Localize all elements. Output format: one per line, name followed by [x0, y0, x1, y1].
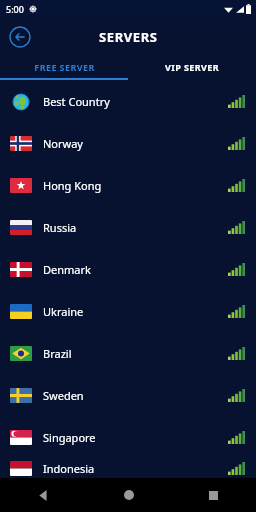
button[interactable]: Back — [0, 478, 86, 512]
staticText: Sweden — [43, 388, 228, 403]
button[interactable]: FREE SERVER — [0, 55, 128, 78]
staticText: VIP SERVER — [165, 61, 219, 73]
button[interactable]: Hong Kong — [0, 164, 256, 206]
staticText: Russia — [43, 220, 228, 235]
button[interactable]: VIP SERVER — [128, 55, 256, 78]
button[interactable]: Norway — [0, 122, 256, 164]
staticText: Ukraine — [43, 304, 228, 319]
staticText: FREE SERVER — [34, 61, 95, 73]
button[interactable]: Recents — [171, 478, 256, 512]
button[interactable]: Sweden — [0, 374, 256, 416]
button[interactable]: Best Country — [0, 80, 256, 122]
button[interactable]: Denmark — [0, 248, 256, 290]
button[interactable]: Home — [86, 478, 171, 512]
staticText: Hong Kong — [43, 178, 228, 193]
staticText: Best Country — [43, 94, 228, 109]
button[interactable]: Ukraine — [0, 290, 256, 332]
staticText: Indonesia — [43, 461, 228, 476]
staticText: Singapore — [43, 430, 228, 445]
button[interactable]: Russia — [0, 206, 256, 248]
button[interactable]: Singapore — [0, 416, 256, 458]
staticText: Denmark — [43, 262, 228, 277]
staticText: SERVERS — [99, 28, 158, 46]
staticText: Brazil — [43, 346, 228, 361]
button[interactable]: Brazil — [0, 332, 256, 374]
button[interactable]: Indonesia — [0, 458, 256, 478]
staticText: Norway — [43, 136, 228, 151]
button[interactable]: Back — [9, 26, 31, 48]
staticText: 5:00 — [6, 3, 24, 15]
